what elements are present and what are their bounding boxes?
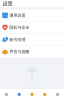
button[interactable]: Tab [13, 89, 26, 100]
button[interactable]: 账号管理 [0, 34, 64, 45]
staticText: 通用设置 [10, 13, 26, 18]
button[interactable]: Tab [51, 89, 64, 100]
button[interactable]: 声音与提醒 [0, 46, 64, 57]
button[interactable]: Tab [26, 89, 38, 100]
button[interactable]: Tab [38, 89, 51, 100]
staticText: 设置 [3, 0, 13, 7]
button[interactable]: 隐私与安全 [0, 22, 64, 33]
button[interactable]: 通用设置 [0, 9, 64, 21]
staticText: 隐私与安全 [10, 25, 30, 30]
staticText: 账号管理 [10, 37, 26, 42]
button[interactable]: Tab [0, 89, 13, 100]
staticText: 声音与提醒 [10, 49, 30, 54]
